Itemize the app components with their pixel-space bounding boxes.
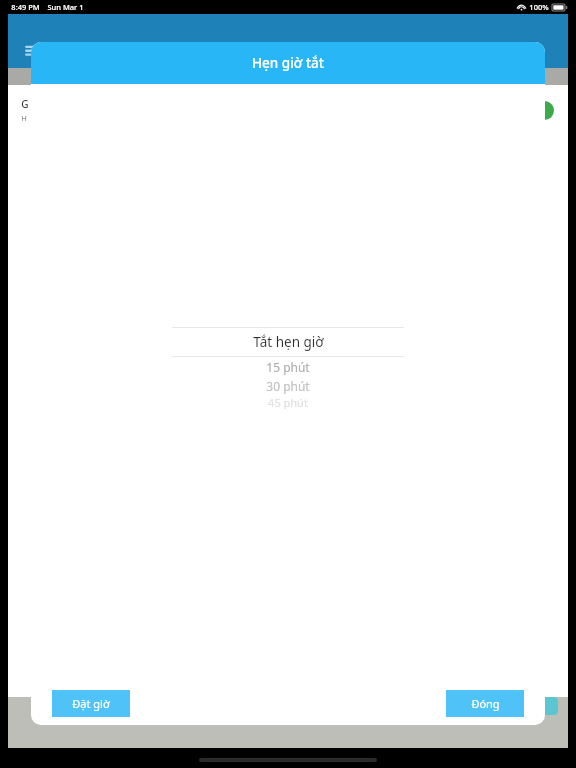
staticText: 8:49 PM [11, 2, 40, 12]
button[interactable]: Đặt giờ [52, 690, 130, 717]
button[interactable]: 15 phút [31, 357, 545, 377]
staticText: G [21, 97, 29, 111]
staticText: Đặt giờ [72, 696, 110, 711]
staticText: Đóng [471, 696, 500, 711]
staticText: 100% [529, 2, 549, 12]
button[interactable]: 45 phút [31, 395, 545, 409]
button[interactable]: Đóng [446, 690, 524, 717]
button[interactable]: 30 phút [31, 377, 545, 395]
staticText: H [21, 113, 27, 123]
staticText: 45 phút [268, 395, 308, 409]
staticText: Hẹn giờ tắt [252, 54, 324, 72]
staticText: Tắt hẹn giờ [253, 333, 324, 351]
staticText: 30 phút [266, 378, 310, 394]
button[interactable]: Tắt hẹn giờ [31, 328, 545, 356]
staticText: Quản lý [266, 47, 310, 63]
button[interactable]: G [8, 85, 568, 135]
button[interactable]: Action [534, 697, 558, 715]
staticText: 15 phút [266, 359, 310, 375]
staticText: Sun Mar 1 [47, 2, 84, 12]
button[interactable]: Open navigation menu [22, 38, 48, 64]
button[interactable]: Enable item [518, 101, 554, 120]
